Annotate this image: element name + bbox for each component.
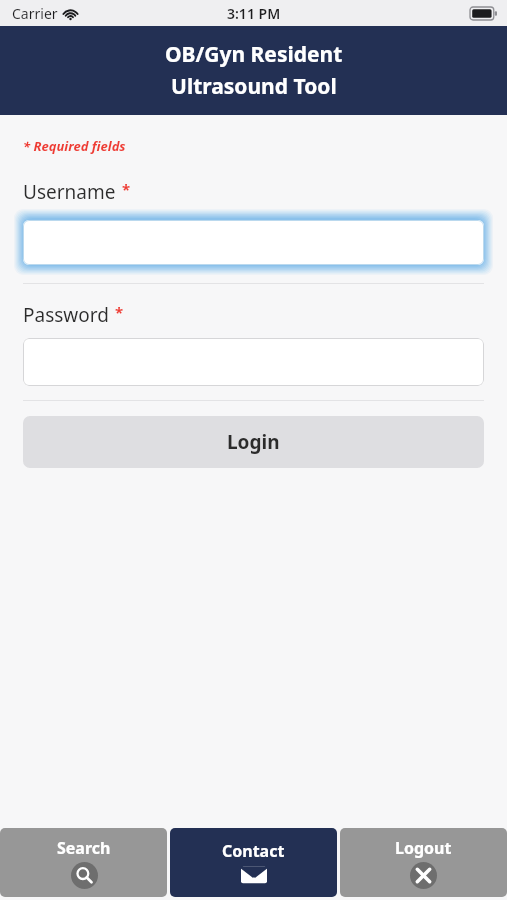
staticText: Carrier [12,4,58,23]
button[interactable] [23,220,484,265]
staticText: Ultrasound Tool [171,72,337,101]
staticText: Username [23,179,116,205]
staticText: Logout [395,837,452,859]
button[interactable]: Login [23,416,484,468]
staticText: 3:11 PM [227,4,281,23]
staticText: * Required fields [23,137,126,155]
staticText: * [122,179,131,199]
button[interactable]: Logout [340,828,507,897]
staticText: * [115,302,124,322]
staticText: OB/Gyn Resident [165,40,343,69]
staticText: Search [57,837,111,859]
button[interactable] [23,338,484,386]
button[interactable]: Search [0,828,167,897]
staticText: Password [23,302,109,328]
staticText: Contact [222,840,285,862]
button[interactable]: Contact [170,828,337,897]
staticText: Login [227,429,280,455]
